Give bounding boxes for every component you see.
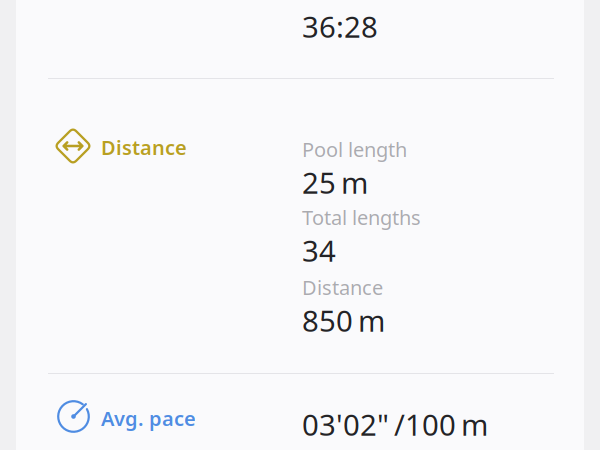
staticText: 34 (302, 231, 336, 270)
staticText: 36:28 (302, 7, 378, 46)
staticText: 25 m (302, 163, 368, 202)
staticText: Avg. pace (101, 405, 196, 432)
button[interactable]: Avg. pace (32, 374, 568, 450)
staticText: 03'02" /100 m (302, 405, 488, 444)
staticText: Pool length (302, 136, 407, 163)
staticText: Total lengths (302, 204, 421, 231)
staticText: Distance (101, 134, 187, 161)
button[interactable]: Distance (32, 79, 568, 373)
staticText: Distance (302, 274, 383, 301)
staticText: 850 m (302, 301, 385, 340)
button[interactable]: 36:28 (32, 0, 568, 78)
